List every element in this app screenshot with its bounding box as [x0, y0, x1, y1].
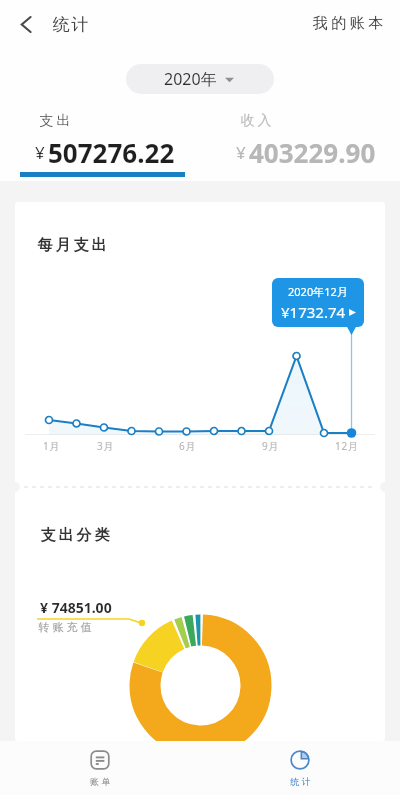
button[interactable]: 收入 [201, 107, 400, 181]
staticText: 6月 [179, 439, 197, 453]
staticText: 账单 [89, 776, 112, 787]
button[interactable]: 统计 [200, 741, 400, 795]
staticText: 每月支出 [36, 236, 108, 255]
staticText: 支出 [38, 112, 72, 130]
staticText: 12月 [335, 439, 359, 453]
staticText: 507276.22 [48, 135, 175, 170]
staticText: 支出分类 [39, 526, 111, 545]
staticText: 2020年 [164, 68, 217, 90]
button[interactable]: 我的账本 [307, 8, 389, 39]
staticText: 收入 [239, 112, 273, 130]
staticText: 3月 [97, 439, 115, 453]
staticText: 2020年12月 [288, 284, 348, 299]
staticText: ¥ [236, 141, 246, 164]
button[interactable]: 账单 [0, 741, 200, 795]
staticText: ¥ 74851.00 [40, 598, 112, 617]
button[interactable]: Back [9, 7, 43, 41]
staticText: 我的账本 [311, 14, 385, 33]
staticText: 统计 [52, 14, 89, 35]
staticText: 转账充值 [37, 620, 93, 634]
staticText: 1月 [43, 439, 61, 453]
staticText: ¥1732.74 [281, 302, 346, 322]
staticText: ¥ [35, 141, 45, 164]
button[interactable]: 支出 [0, 107, 199, 181]
staticText: 9月 [262, 439, 280, 453]
staticText: 403229.90 [249, 135, 376, 170]
staticText: 统计 [289, 776, 312, 787]
button[interactable]: 2020年 [126, 64, 274, 94]
